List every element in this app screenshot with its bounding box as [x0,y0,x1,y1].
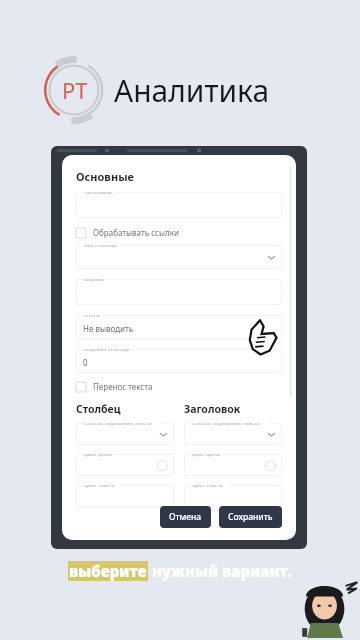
button[interactable]: Перенос текста [76,381,282,392]
button[interactable]: Ширина столбца [76,349,282,373]
button[interactable]: Формат [76,279,282,305]
staticText: Ширина столбца [84,349,130,352]
staticText: 0 [83,357,88,368]
staticText: Столбец [76,402,121,416]
button[interactable]: Способ обрезания текста [76,423,174,445]
staticText: Заголовок [84,192,112,195]
button[interactable]: Заголовок [76,192,282,218]
staticText: Цвет текста [84,485,115,488]
button[interactable]: Отмена [160,506,211,528]
button[interactable]: Сохранить [219,506,282,528]
staticText: Обрабатывать ссылки [93,227,179,238]
button[interactable]: Способ обрезания текста [184,423,282,445]
staticText: Основные [76,169,134,184]
staticText: Сохранить [228,511,273,523]
staticText: Итоги [84,315,100,318]
staticText: Цвет фона [84,454,112,457]
staticText: Перенос текста [93,381,153,392]
button[interactable]: Тип столбца [76,245,282,269]
staticText: Формат [84,279,105,282]
staticText: Не выводить [83,323,134,334]
staticText: нужный вариант. [148,561,292,581]
button[interactable]: Цвет текста [76,485,174,507]
staticText: Отмена [169,511,202,523]
button[interactable]: Цвет текста [184,485,282,507]
button[interactable]: Цвет фона [76,454,174,476]
staticText: Цвет фона [192,454,220,457]
button[interactable]: Обрабатывать ссылки [76,227,282,238]
button[interactable]: Цвет фона [184,454,282,476]
button[interactable]: Итоги [76,315,282,339]
staticText: Способ обрезания текста [84,423,152,426]
staticText: Заголовок [184,402,241,416]
staticText: Аналитика [114,70,270,111]
staticText: PT [62,75,88,105]
staticText: Тип столбца [84,245,117,248]
other: Pointer [248,318,278,356]
staticText: выберите [69,561,147,581]
staticText: Цвет текста [192,485,223,488]
staticText: Способ обрезания текста [192,423,260,426]
